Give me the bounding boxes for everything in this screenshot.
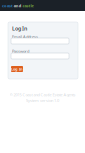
staticText: Log In bbox=[12, 25, 27, 32]
staticText: © 2015 Coast and Castle Estate Agents bbox=[9, 92, 75, 97]
staticText: Log In bbox=[11, 66, 23, 72]
button[interactable]: Log In bbox=[11, 66, 23, 72]
staticText: and bbox=[14, 3, 22, 8]
staticText: System version 1.0 bbox=[26, 98, 59, 103]
staticText: coast bbox=[2, 3, 13, 8]
staticText: Password bbox=[12, 48, 29, 54]
staticText: castle bbox=[23, 3, 34, 8]
staticText: Email Address bbox=[12, 34, 38, 39]
